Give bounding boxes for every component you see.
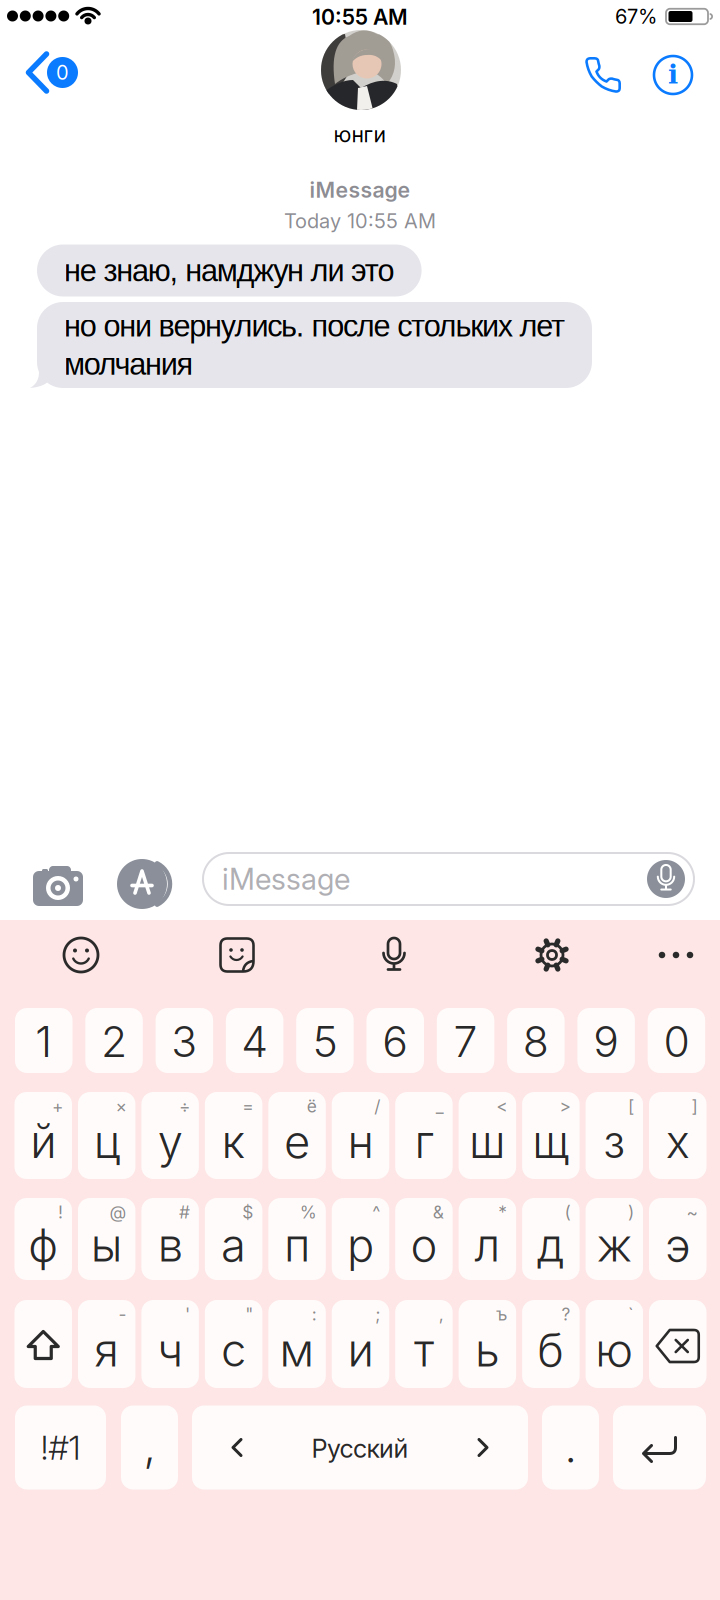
button[interactable]: л bbox=[459, 1198, 516, 1280]
button[interactable]: п bbox=[268, 1198, 326, 1280]
button[interactable]: г bbox=[395, 1092, 453, 1179]
button[interactable]: Settings bbox=[532, 935, 572, 975]
staticText: з bbox=[603, 1115, 625, 1168]
button[interactable]: б bbox=[522, 1300, 580, 1388]
button[interactable]: . bbox=[542, 1405, 599, 1489]
button[interactable]: Call bbox=[583, 55, 623, 95]
button[interactable]: 8 bbox=[507, 1008, 565, 1073]
button[interactable]: к bbox=[205, 1092, 262, 1179]
staticText: Русский bbox=[311, 1434, 408, 1463]
button[interactable]: с bbox=[205, 1300, 262, 1388]
button[interactable]: iMessage text field bbox=[203, 853, 694, 905]
staticText: б bbox=[537, 1323, 564, 1377]
staticText: !#1 bbox=[40, 1428, 80, 1467]
button[interactable]: н bbox=[332, 1092, 389, 1179]
button[interactable]: More bbox=[654, 935, 698, 975]
staticText: и bbox=[347, 1323, 373, 1377]
button[interactable]: ц bbox=[78, 1092, 135, 1179]
button[interactable]: ь bbox=[459, 1300, 516, 1388]
staticText: р bbox=[347, 1218, 374, 1272]
button[interactable]: р bbox=[332, 1198, 389, 1280]
staticText: т bbox=[414, 1323, 434, 1377]
staticText: 5 bbox=[312, 1016, 337, 1067]
button[interactable]: Dictation bbox=[379, 936, 409, 976]
button[interactable]: ф bbox=[14, 1198, 72, 1280]
button[interactable]: ч bbox=[141, 1300, 199, 1388]
staticText: iMessage bbox=[222, 862, 350, 896]
staticText: 10:55 AM bbox=[312, 4, 408, 30]
staticText: 7 bbox=[453, 1016, 477, 1067]
button[interactable]: Shift bbox=[14, 1300, 72, 1388]
button[interactable]: 6 bbox=[366, 1008, 424, 1073]
staticText: ф bbox=[28, 1218, 58, 1272]
staticText: ] bbox=[691, 1096, 697, 1116]
button[interactable]: !#1 bbox=[15, 1405, 106, 1489]
button[interactable]: Stickers bbox=[217, 935, 257, 975]
button[interactable]: ш bbox=[459, 1092, 516, 1179]
staticText: г bbox=[414, 1115, 433, 1168]
staticText: > bbox=[560, 1096, 571, 1116]
button[interactable]: Back bbox=[24, 52, 80, 92]
button[interactable]: 9 bbox=[577, 1008, 635, 1073]
button[interactable]: Return bbox=[613, 1405, 706, 1489]
staticText: ' bbox=[185, 1304, 190, 1324]
button[interactable]: ж bbox=[586, 1198, 643, 1280]
staticText: _ bbox=[436, 1096, 444, 1116]
button[interactable]: д bbox=[522, 1198, 580, 1280]
staticText: ~ bbox=[686, 1202, 697, 1222]
staticText: юнги bbox=[333, 122, 386, 147]
button[interactable]: в bbox=[141, 1198, 199, 1280]
button[interactable]: 4 bbox=[226, 1008, 283, 1073]
staticText: 4 bbox=[241, 1016, 268, 1067]
staticText: молчания bbox=[64, 347, 194, 381]
staticText: ( bbox=[565, 1202, 571, 1222]
button[interactable]: и bbox=[332, 1300, 389, 1388]
staticText: ` bbox=[628, 1304, 634, 1324]
button[interactable]: ы bbox=[78, 1198, 135, 1280]
button[interactable]: 7 bbox=[437, 1008, 494, 1073]
button[interactable]: ю bbox=[586, 1300, 643, 1388]
button[interactable]: Emoji bbox=[61, 935, 101, 975]
button[interactable]: м bbox=[268, 1300, 326, 1388]
staticText: не знаю, намджун ли это bbox=[64, 253, 395, 288]
staticText: 9 bbox=[593, 1016, 619, 1067]
button[interactable]: 1 bbox=[15, 1008, 72, 1073]
staticText: + bbox=[52, 1096, 63, 1116]
button[interactable]: Space Русский bbox=[192, 1405, 528, 1489]
button[interactable]: а bbox=[205, 1198, 262, 1280]
button[interactable]: е bbox=[268, 1092, 326, 1179]
staticText: " bbox=[245, 1304, 253, 1324]
button[interactable]: щ bbox=[522, 1092, 580, 1179]
staticText: , bbox=[143, 1419, 155, 1471]
button[interactable]: у bbox=[141, 1092, 199, 1179]
button[interactable]: т bbox=[395, 1300, 453, 1388]
button[interactable]: х bbox=[649, 1092, 706, 1179]
button[interactable]: 0 bbox=[648, 1008, 705, 1073]
staticText: 67% bbox=[615, 5, 657, 28]
button[interactable]: й bbox=[14, 1092, 72, 1179]
staticText: ! bbox=[58, 1202, 63, 1222]
button[interactable]: 5 bbox=[296, 1008, 354, 1073]
button[interactable]: 3 bbox=[156, 1008, 213, 1073]
button[interactable]: Contact юнги bbox=[321, 30, 401, 110]
button[interactable]: Delete bbox=[649, 1300, 706, 1388]
staticText: [ bbox=[628, 1096, 634, 1116]
staticText: н bbox=[347, 1115, 373, 1168]
button[interactable]: о bbox=[395, 1198, 453, 1280]
staticText: : bbox=[312, 1304, 317, 1324]
staticText: = bbox=[242, 1096, 253, 1116]
button[interactable]: з bbox=[586, 1092, 643, 1179]
staticText: ж bbox=[597, 1218, 632, 1272]
staticText: i bbox=[668, 58, 678, 90]
button[interactable]: Info bbox=[651, 53, 695, 97]
staticText: iMessage bbox=[309, 177, 410, 203]
button[interactable]: Camera bbox=[33, 864, 83, 906]
staticText: ; bbox=[375, 1304, 380, 1324]
button[interactable]: я bbox=[78, 1300, 135, 1388]
button[interactable]: App Store bbox=[111, 858, 173, 910]
button[interactable]: э bbox=[649, 1198, 706, 1280]
staticText: 2 bbox=[101, 1016, 127, 1067]
button[interactable]: 2 bbox=[85, 1008, 143, 1073]
staticText: ё bbox=[307, 1096, 317, 1116]
button[interactable]: , bbox=[121, 1405, 178, 1489]
